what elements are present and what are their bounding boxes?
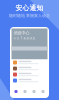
button[interactable]: Alerts (29, 86, 38, 96)
staticText: 随时随地 掌握家人动态 (9, 13, 50, 18)
button[interactable]: Me (38, 86, 47, 96)
button[interactable]: Explore (20, 86, 29, 96)
button[interactable] (11, 77, 47, 83)
staticText: 消息中心 (13, 30, 29, 35)
button[interactable] (11, 59, 47, 65)
button[interactable]: Home (11, 86, 20, 96)
button[interactable] (11, 71, 47, 77)
button[interactable] (11, 65, 47, 71)
staticText: 安心通知 (15, 4, 43, 12)
staticText: 今日 3 条新消息 (13, 36, 35, 40)
